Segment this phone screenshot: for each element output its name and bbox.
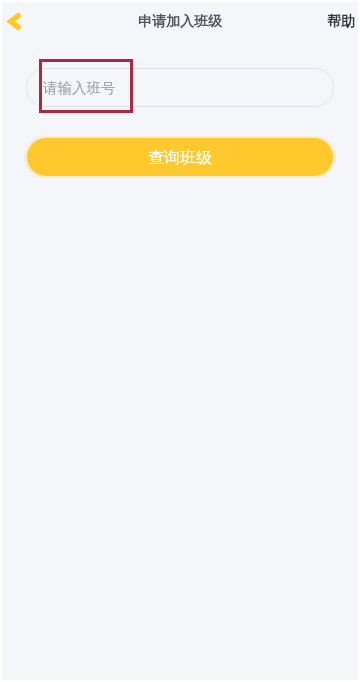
- staticText: 查询班级: [148, 148, 212, 168]
- staticText: 申请加入班级: [138, 13, 222, 31]
- button[interactable]: 帮助: [317, 7, 358, 37]
- button[interactable]: Back: [0, 5, 30, 37]
- button[interactable]: 查询班级: [27, 138, 333, 176]
- staticText: 帮助: [327, 13, 355, 31]
- button[interactable]: 请输入班号: [26, 68, 334, 107]
- staticText: 请输入班号: [43, 79, 116, 97]
